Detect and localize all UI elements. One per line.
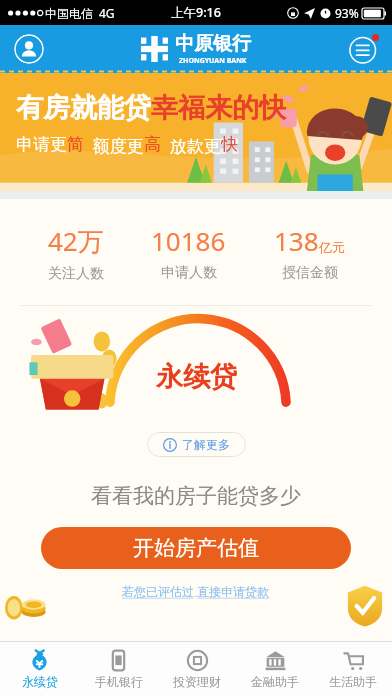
button[interactable]: 开始房产估值 (41, 527, 351, 569)
button[interactable]: 投资理财 (158, 642, 236, 696)
staticText: 快 (221, 134, 238, 155)
staticText: 上午9:16 (171, 4, 221, 21)
staticText: 放款更 (161, 134, 221, 157)
staticText: 高 (144, 134, 161, 155)
staticText: 42万 (48, 223, 104, 259)
staticText: ZHONGYUAN BANK (179, 56, 247, 66)
staticText: 93% (335, 5, 359, 21)
staticText: 4G (99, 5, 115, 21)
button[interactable]: Menu (348, 33, 380, 65)
button[interactable]: 金融助手 (236, 642, 314, 696)
button[interactable]: 若您已评估过 直接申请贷款 (122, 583, 270, 599)
staticText: 看看我的房子能贷多少 (91, 483, 301, 509)
staticText: 亿元 (319, 239, 345, 255)
button[interactable]: 了解更多 (147, 432, 246, 457)
staticText: 中国电信 (45, 6, 93, 21)
staticText: 有房就能贷 (16, 91, 151, 125)
button[interactable]: 手机银行 (79, 642, 158, 696)
staticText: 了解更多 (182, 437, 230, 452)
staticText: 投资理财 (173, 674, 221, 689)
staticText: 138 (274, 223, 319, 258)
staticText: 永续贷 (22, 674, 58, 689)
button[interactable]: Account (14, 34, 44, 64)
staticText: 10186 (151, 223, 226, 258)
staticText: 生活助手 (329, 674, 377, 689)
staticText: 额度更 (84, 134, 144, 157)
staticText: 开始房产估值 (133, 535, 259, 561)
staticText: 手机银行 (95, 674, 143, 689)
staticText: 金融助手 (251, 674, 299, 689)
staticText: 授信金额 (282, 264, 338, 282)
staticText: 永续贷 (156, 360, 237, 394)
button[interactable]: 永续贷 (0, 642, 79, 696)
staticText: 申请更 (16, 134, 67, 155)
button[interactable]: 生活助手 (314, 642, 392, 696)
staticText: 幸福来的快 (151, 91, 286, 125)
staticText: 中原银行 (175, 32, 251, 56)
staticText: 关注人数 (48, 265, 104, 283)
staticText: 申请人数 (161, 264, 217, 282)
staticText: 简 (67, 134, 84, 155)
